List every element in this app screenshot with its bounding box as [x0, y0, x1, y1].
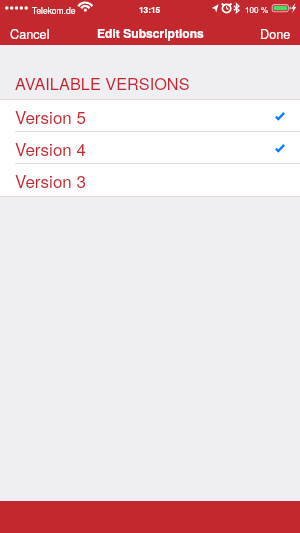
staticText: Done	[260, 24, 291, 41]
staticText: Version 3	[15, 168, 86, 192]
staticText: Cancel	[10, 24, 50, 41]
other: Selected	[275, 144, 285, 152]
staticText: 13:15	[139, 4, 161, 16]
other: Selected	[275, 112, 285, 120]
staticText: AVAILABLE VERSIONS	[15, 71, 190, 94]
button[interactable]: Version 4	[0, 132, 300, 164]
staticText: Version 5	[15, 104, 86, 128]
staticText: 100 %	[245, 4, 269, 16]
button[interactable]: Version 5	[0, 100, 300, 132]
staticText: Telekom.de	[32, 4, 76, 16]
button[interactable]: Cancel	[0, 20, 60, 45]
staticText: Version 4	[15, 136, 86, 160]
button[interactable]: Version 3	[0, 164, 300, 196]
staticText: Edit Subscriptions	[97, 24, 204, 41]
button[interactable]: Done	[250, 20, 300, 45]
